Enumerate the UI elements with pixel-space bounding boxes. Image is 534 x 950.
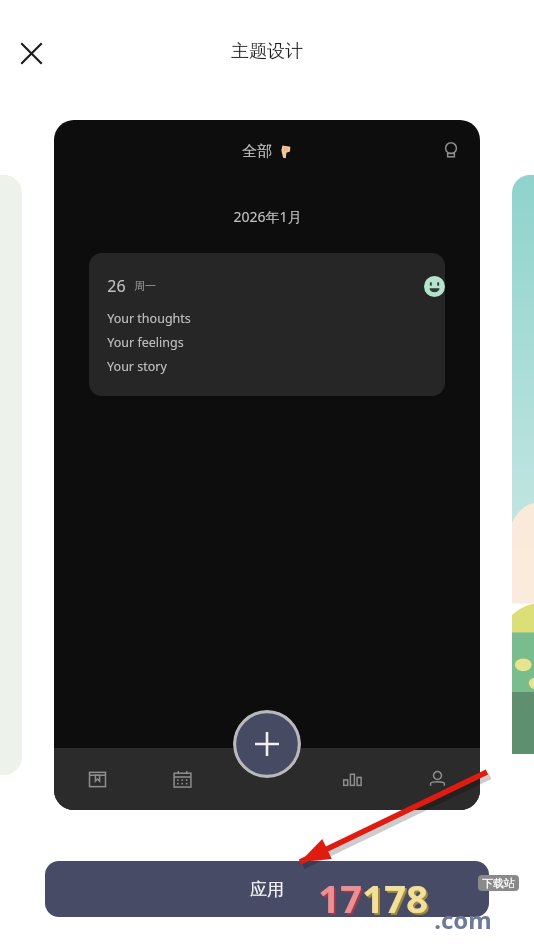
staticText: 1 [318,872,340,924]
staticText: Your story [107,358,167,375]
staticText: 全部 [242,142,272,161]
button[interactable]: 全部 [54,120,480,810]
button[interactable]: Profile [395,748,480,810]
button[interactable] [512,175,534,775]
staticText: Your thoughts [107,310,191,327]
staticText: 7 [342,874,364,926]
button[interactable]: Statistics [310,748,395,810]
staticText: 应用 [250,879,284,900]
staticText: 7 [386,874,408,926]
staticText: Your feelings [107,334,184,351]
button[interactable]: Insights [432,132,470,170]
staticText: 2026年1月 [233,207,302,226]
button[interactable]: 应用 [45,861,489,917]
staticText: 主题设计 [231,40,303,63]
button[interactable]: 26 [89,253,445,396]
staticText: 1 [364,874,386,926]
button[interactable]: Journal [54,748,140,810]
button[interactable]: Close [8,30,54,76]
staticText: 1 [362,872,384,924]
staticText: 周一 [134,279,156,293]
staticText: 下载站 [482,876,515,890]
staticText: 7 [340,872,362,924]
button[interactable]: Add entry [233,710,301,778]
staticText: 7 [384,872,406,924]
staticText: 26 [107,275,126,297]
staticText: 1 [320,874,342,926]
staticText: 8 [408,874,430,926]
staticText: .com [434,903,492,936]
button[interactable]: Calendar [140,748,225,810]
staticText: 8 [406,872,428,924]
